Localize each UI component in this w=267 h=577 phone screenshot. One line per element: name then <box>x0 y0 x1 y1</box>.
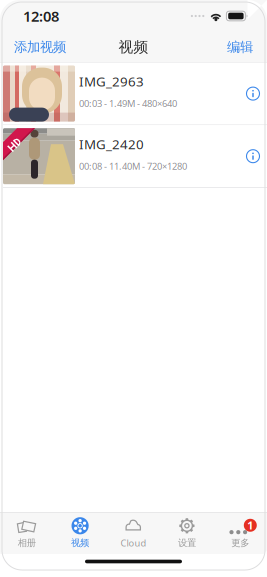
staticText: 视频 <box>71 537 89 549</box>
button[interactable]: Cloud <box>107 513 160 554</box>
button[interactable]: IMG_2420 <box>0 125 267 188</box>
button[interactable]: 1 <box>214 513 267 554</box>
staticText: 设置 <box>178 537 196 549</box>
staticText: 更多 <box>231 537 249 549</box>
staticText: 12:08 <box>23 6 59 26</box>
button[interactable]: Info <box>240 81 266 107</box>
staticText: 1 <box>247 518 253 532</box>
staticText: IMG_2420 <box>79 135 144 153</box>
staticText: 编辑 <box>227 39 253 55</box>
button[interactable]: 添加视频 <box>8 32 72 62</box>
staticText: IMG_2963 <box>79 73 144 90</box>
staticText: 相册 <box>18 537 36 549</box>
button[interactable]: 相册 <box>0 513 53 554</box>
staticText: 添加视频 <box>14 39 66 55</box>
button[interactable]: IMG_2963 <box>0 63 267 125</box>
staticText: 00:03 - 1.49M - 480×640 <box>79 97 177 110</box>
staticText: Cloud <box>120 537 146 549</box>
button[interactable]: 视频 <box>53 513 107 554</box>
button[interactable]: Info <box>240 143 266 169</box>
button[interactable]: 设置 <box>160 513 214 554</box>
button[interactable]: 编辑 <box>221 32 259 62</box>
staticText: 视频 <box>118 38 148 56</box>
staticText: 00:08 - 11.40M - 720×1280 <box>79 160 187 172</box>
